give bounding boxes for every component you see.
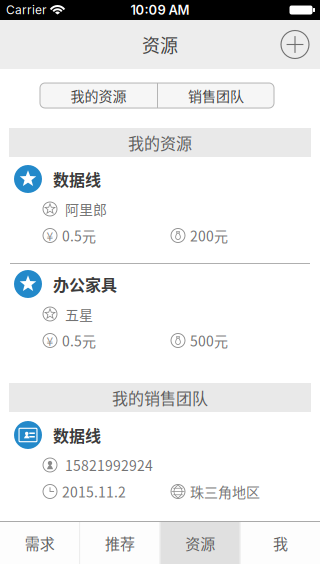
staticText: 办公家具 — [53, 272, 117, 296]
button[interactable]: 数据线 — [0, 420, 320, 503]
button[interactable]: 我 — [241, 522, 320, 564]
staticText: 资源 — [142, 31, 178, 58]
staticText: 200元 — [190, 225, 228, 246]
staticText: 珠三角地区 — [190, 481, 260, 502]
button[interactable]: 办公家具 — [0, 269, 320, 352]
staticText: 我的资源 — [128, 131, 192, 154]
staticText: 需求 — [25, 532, 55, 554]
staticText: 0.5元 — [62, 225, 96, 246]
button[interactable]: 推荐 — [80, 522, 159, 564]
staticText: 数据线 — [53, 167, 101, 191]
staticText: 数据线 — [53, 423, 101, 447]
staticText: 500元 — [190, 330, 228, 351]
staticText: ¥ — [46, 227, 53, 244]
staticText: Carrier — [6, 3, 47, 17]
staticText: 15821992924 — [65, 455, 153, 475]
button[interactable]: 资源 — [160, 522, 240, 564]
button[interactable]: 销售团队 — [158, 83, 274, 108]
staticText: 0.5元 — [62, 330, 96, 351]
staticText: 五星 — [65, 304, 93, 324]
staticText: 资源 — [185, 532, 215, 554]
staticText: 我的销售团队 — [112, 386, 208, 409]
staticText: ¥ — [46, 332, 53, 349]
staticText: 2015.11.2 — [62, 481, 126, 502]
button[interactable]: 需求 — [0, 522, 79, 564]
staticText: 阿里郎 — [65, 199, 107, 219]
button[interactable]: 我的资源 — [40, 83, 157, 108]
staticText: 销售团队 — [188, 85, 244, 106]
button[interactable]: 数据线 — [0, 164, 320, 247]
staticText: 10:09 AM — [130, 2, 189, 18]
staticText: 推荐 — [105, 532, 135, 554]
staticText: 我 — [273, 532, 288, 554]
button[interactable]: Add — [273, 22, 317, 66]
staticText: 我的资源 — [70, 85, 126, 106]
